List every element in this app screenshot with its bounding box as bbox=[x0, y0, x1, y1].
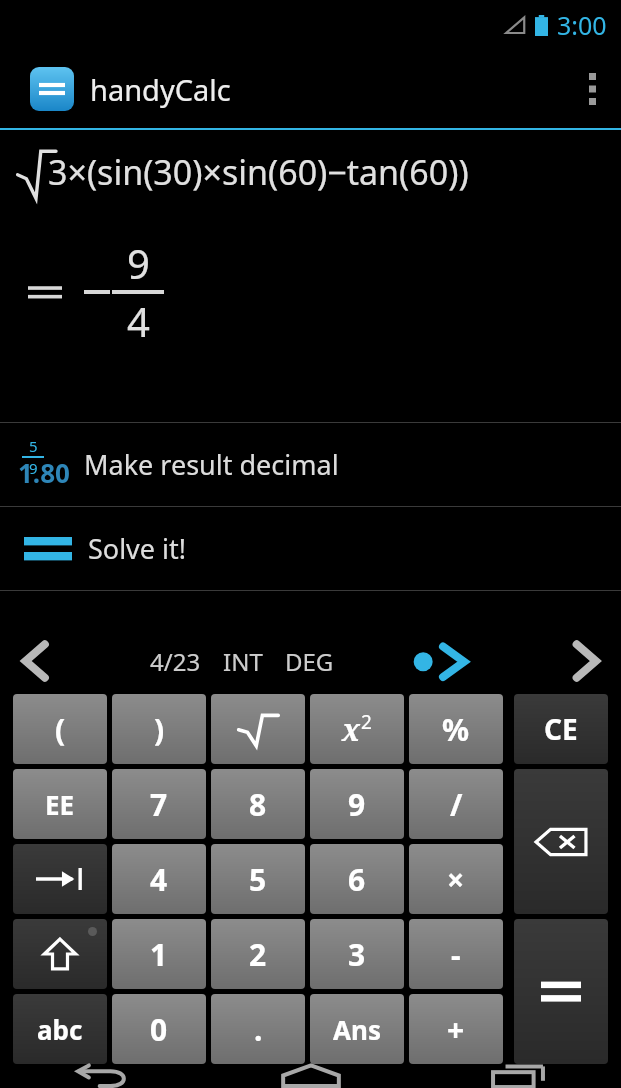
button[interactable]: x bbox=[310, 694, 404, 764]
button[interactable]: 0 bbox=[112, 994, 206, 1064]
staticText: 5 bbox=[29, 436, 38, 456]
staticText: 1 bbox=[150, 934, 168, 975]
button[interactable] bbox=[13, 844, 107, 914]
button[interactable]: Back bbox=[0, 1064, 207, 1088]
staticText: 9 bbox=[127, 236, 150, 290]
button[interactable]: Previous bbox=[0, 633, 70, 689]
staticText: 3 bbox=[348, 934, 366, 975]
staticText: 9 bbox=[29, 458, 38, 478]
staticText: 4 bbox=[127, 294, 150, 348]
staticText: 1.80 bbox=[18, 455, 70, 490]
staticText: × bbox=[447, 859, 465, 900]
button[interactable]: 9 bbox=[310, 769, 404, 839]
button[interactable]: 5 bbox=[211, 844, 305, 914]
button[interactable]: 4 bbox=[112, 844, 206, 914]
staticText: x bbox=[342, 709, 361, 750]
button[interactable]: 2 bbox=[211, 919, 305, 989]
staticText: CE bbox=[544, 710, 578, 748]
staticText: INT bbox=[223, 645, 263, 678]
staticText: Solve it! bbox=[88, 530, 187, 567]
button[interactable]: Solve it! bbox=[0, 507, 621, 590]
button[interactable]: / bbox=[409, 769, 503, 839]
staticText: Ans bbox=[333, 1012, 381, 1047]
staticText: 2 bbox=[361, 709, 372, 735]
staticText: 4/23 bbox=[150, 645, 201, 678]
button[interactable]: + bbox=[409, 994, 503, 1064]
staticText: 2 bbox=[249, 934, 267, 975]
staticText: / bbox=[450, 784, 463, 825]
staticText: + bbox=[447, 1009, 465, 1050]
button[interactable]: % bbox=[409, 694, 503, 764]
staticText: 7 bbox=[150, 784, 168, 825]
button[interactable]: Next bbox=[551, 633, 621, 689]
button[interactable]: Next step bbox=[412, 633, 482, 689]
button[interactable]: Home bbox=[207, 1064, 414, 1088]
staticText: abc bbox=[37, 1012, 83, 1047]
button[interactable]: 8 bbox=[211, 769, 305, 839]
staticText: 3×(sin(30)×sin(60)−tan(60)) bbox=[48, 149, 469, 195]
staticText: EE bbox=[45, 787, 75, 822]
staticText: 0 bbox=[150, 1009, 168, 1050]
button[interactable]: 5 bbox=[0, 423, 621, 506]
staticText: DEG bbox=[285, 645, 334, 678]
button[interactable] bbox=[514, 919, 608, 1064]
button[interactable]: CE bbox=[514, 694, 608, 764]
staticText: . bbox=[254, 1009, 263, 1050]
staticText: 4 bbox=[150, 859, 168, 900]
button[interactable] bbox=[13, 919, 107, 989]
button[interactable]: 6 bbox=[310, 844, 404, 914]
button[interactable] bbox=[211, 694, 305, 764]
button[interactable] bbox=[514, 769, 608, 914]
button[interactable]: 7 bbox=[112, 769, 206, 839]
staticText: % bbox=[442, 709, 470, 750]
button[interactable]: Ans bbox=[310, 994, 404, 1064]
button[interactable]: 3 bbox=[310, 919, 404, 989]
staticText: handyCalc bbox=[90, 70, 231, 109]
button[interactable]: More options bbox=[563, 50, 621, 128]
staticText: 9 bbox=[348, 784, 366, 825]
button[interactable]: 1 bbox=[112, 919, 206, 989]
button[interactable]: EE bbox=[13, 769, 107, 839]
button[interactable]: ) bbox=[112, 694, 206, 764]
staticText: 5 bbox=[249, 859, 267, 900]
staticText: ( bbox=[55, 709, 66, 750]
staticText: ) bbox=[154, 709, 165, 750]
staticText: Make result decimal bbox=[84, 446, 339, 483]
staticText: 6 bbox=[348, 859, 366, 900]
staticText: 8 bbox=[249, 784, 267, 825]
staticText: - bbox=[451, 934, 461, 975]
button[interactable]: . bbox=[211, 994, 305, 1064]
button[interactable]: abc bbox=[13, 994, 107, 1064]
staticText: 3:00 bbox=[557, 8, 607, 42]
button[interactable]: ( bbox=[13, 694, 107, 764]
button[interactable]: - bbox=[409, 919, 503, 989]
button[interactable]: Recent apps bbox=[414, 1064, 621, 1088]
button[interactable]: × bbox=[409, 844, 503, 914]
